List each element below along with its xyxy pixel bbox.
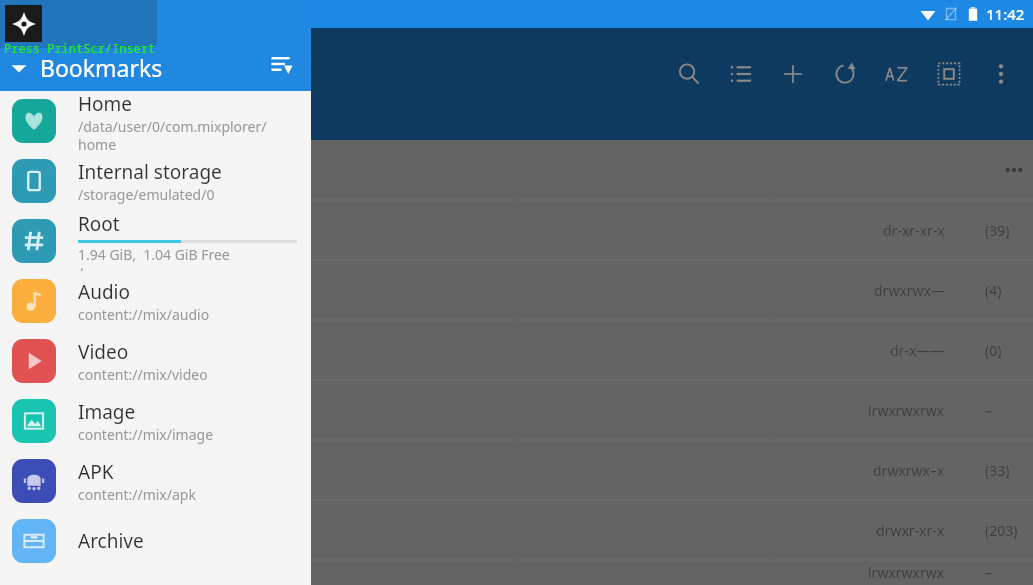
button[interactable]: Audio [0, 271, 311, 331]
button[interactable]: Image [0, 391, 311, 451]
button[interactable]: Root [0, 211, 311, 271]
staticText: (4) [985, 281, 1033, 300]
staticText: Image [78, 399, 136, 425]
staticText: Home [78, 91, 133, 117]
staticText: lrwxrwxrwx [868, 563, 945, 582]
button[interactable]: Home [0, 91, 311, 151]
staticText: APK [78, 459, 114, 485]
staticText: Audio [78, 279, 130, 305]
button[interactable]: Video [0, 331, 311, 391]
staticText: 11:42 [986, 4, 1025, 24]
staticText: 1.94 GiB, 1.04 GiB Free / [78, 245, 230, 271]
staticText: Video [78, 339, 129, 365]
staticText: Root [78, 211, 120, 237]
button[interactable]: New [767, 48, 819, 100]
button[interactable]: drwxrwx–x [0, 440, 1033, 500]
staticText: content://mix/image [78, 425, 214, 444]
staticText: Archive [78, 528, 144, 554]
staticText: Bookmarks [40, 52, 163, 83]
staticText: content://mix/video [78, 365, 208, 384]
staticText: drwxrwx–x [873, 461, 945, 480]
staticText: drwxr-xr-x [876, 521, 945, 540]
staticText: dr-xr-xr-x [883, 221, 945, 240]
button[interactable]: lrwxrwxrwx [0, 560, 1033, 585]
staticText: /storage/emulated/0 [78, 185, 215, 204]
button[interactable]: lrwxrwxrwx [0, 380, 1033, 440]
staticText: lrwxrwxrwx [868, 401, 945, 420]
button[interactable]: APK [0, 451, 311, 511]
staticText: content://mix/apk [78, 485, 196, 504]
staticText: dr-x—— [890, 341, 945, 360]
button[interactable]: drwxrwx— [0, 260, 1033, 320]
button[interactable]: Refresh [819, 48, 871, 100]
button[interactable]: Bookmarks [0, 0, 311, 91]
button[interactable]: More options [975, 48, 1027, 100]
button[interactable]: dr-x—— [0, 320, 1033, 380]
staticText: content://mix/audio [78, 305, 210, 324]
staticText: (0) [985, 341, 1033, 360]
staticText: drwxrwx— [874, 281, 945, 300]
staticText: Press PrintScr/Insert [4, 40, 156, 56]
button[interactable]: List view [715, 48, 767, 100]
staticText: Internal storage [78, 159, 222, 185]
staticText: /data/user/0/com.mixplorer/ home [78, 117, 267, 151]
button[interactable]: Select all [923, 48, 975, 100]
staticText: (203) [985, 521, 1033, 540]
button[interactable]: Sort A to Z [871, 48, 923, 100]
button[interactable]: Internal storage [0, 151, 311, 211]
staticText: (39) [985, 221, 1033, 240]
button[interactable]: drwxr-xr-x [0, 500, 1033, 560]
button[interactable]: Archive [0, 511, 311, 571]
button[interactable]: Sort bookmarks [267, 49, 297, 79]
staticText: (33) [985, 461, 1033, 480]
button[interactable]: Search [663, 48, 715, 100]
button[interactable]: dr-xr-xr-x [0, 200, 1033, 260]
